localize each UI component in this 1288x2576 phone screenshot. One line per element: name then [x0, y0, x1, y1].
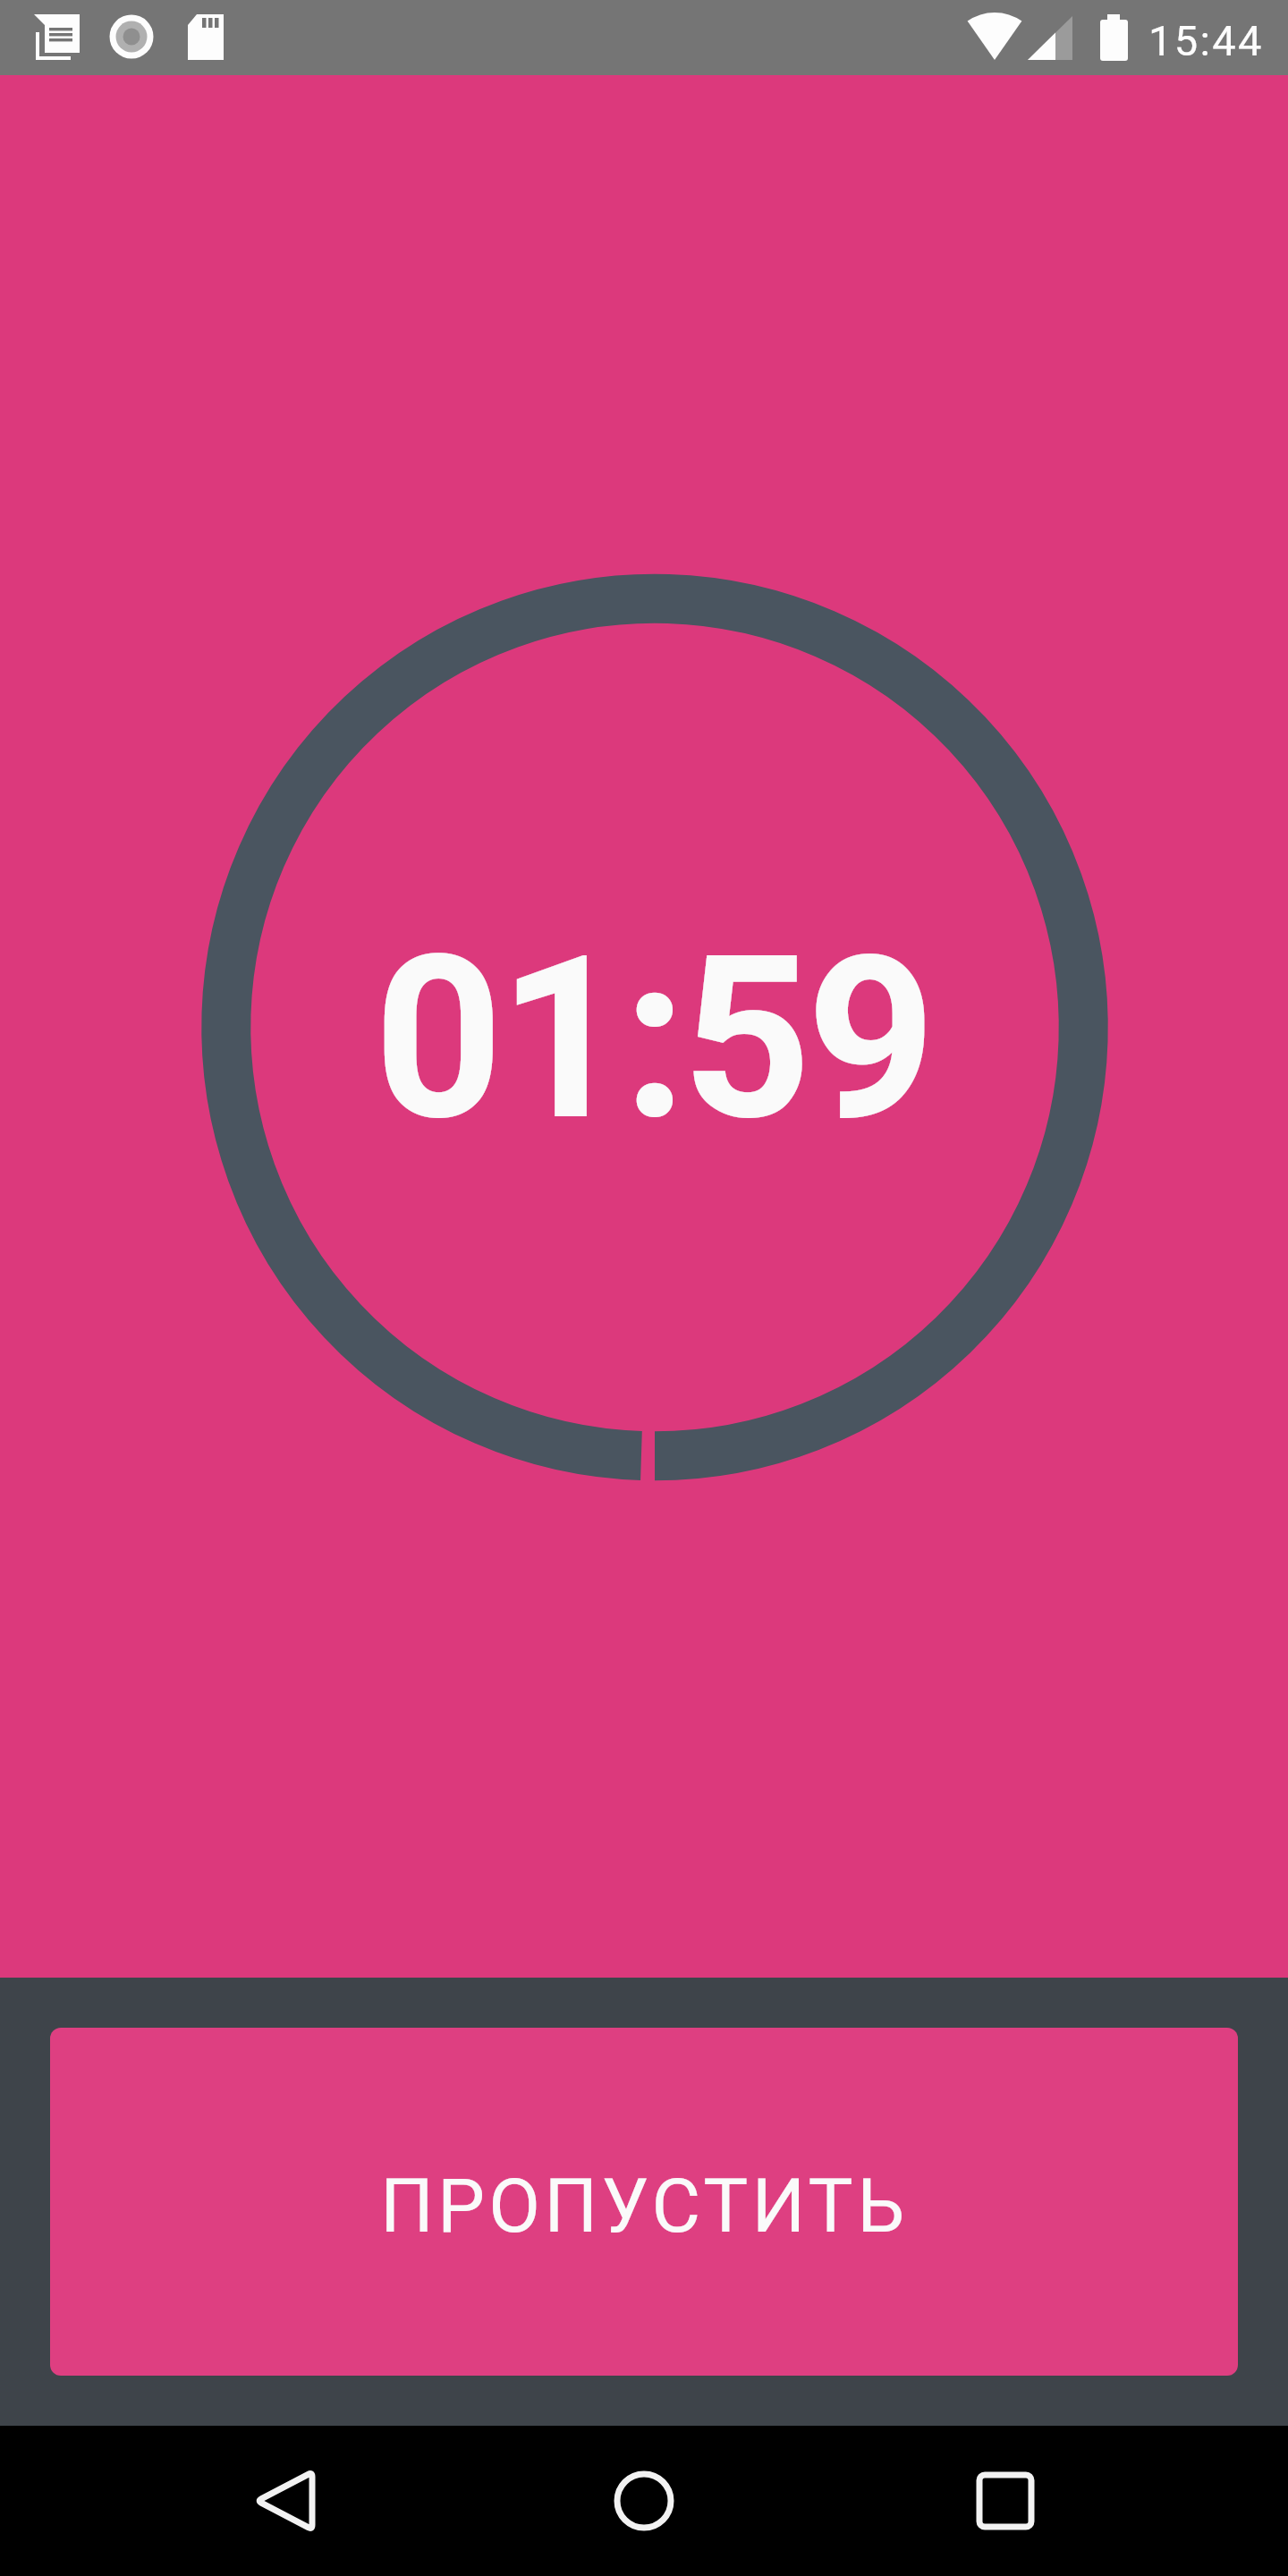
staticText: 15:44: [1148, 16, 1264, 65]
staticText: 01:59: [374, 907, 931, 1171]
button[interactable]: ПРОПУСТИТЬ: [50, 2028, 1238, 2376]
staticText: ПРОПУСТИТЬ: [380, 2162, 909, 2250]
